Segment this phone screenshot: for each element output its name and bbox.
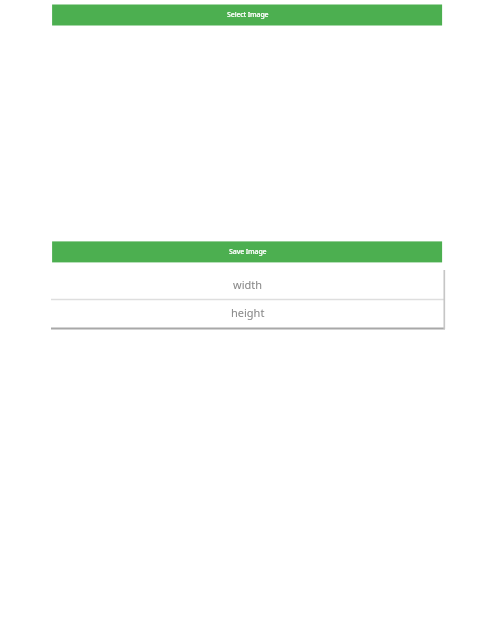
button[interactable]: height xyxy=(52,299,442,328)
button[interactable]: Save Image xyxy=(52,241,442,262)
button[interactable]: width xyxy=(52,270,442,300)
staticText: Save Image xyxy=(229,247,267,257)
staticText: width xyxy=(233,277,263,292)
staticText: height xyxy=(231,305,265,320)
staticText: Select Image xyxy=(227,9,269,19)
button[interactable]: Select Image xyxy=(52,4,442,25)
